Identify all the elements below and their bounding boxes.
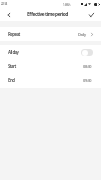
staticText: Effective time period bbox=[27, 11, 68, 18]
staticText: All day bbox=[8, 49, 19, 55]
staticText: 22:14 bbox=[1, 2, 7, 6]
staticText: Start bbox=[8, 63, 16, 69]
staticText: 08:30 bbox=[83, 64, 92, 69]
button[interactable]: Start bbox=[0, 59, 101, 73]
button[interactable]: Repeat bbox=[0, 27, 101, 41]
staticText: Daily bbox=[78, 32, 86, 37]
staticText: Repeat bbox=[8, 31, 20, 37]
staticText: End bbox=[8, 77, 15, 83]
staticText: 09:30 bbox=[83, 78, 92, 83]
staticText: 1.68K/s bbox=[63, 3, 71, 7]
button[interactable]: All day bbox=[0, 45, 101, 59]
button[interactable]: Back bbox=[1, 7, 16, 22]
button[interactable]: End bbox=[0, 73, 101, 87]
button[interactable]: Confirm bbox=[84, 7, 99, 22]
